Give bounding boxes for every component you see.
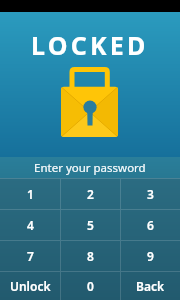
staticText: 2	[87, 186, 94, 202]
staticText: 8	[87, 248, 94, 264]
staticText: 7	[27, 248, 34, 264]
button[interactable]: Back	[120, 271, 180, 300]
button[interactable]: 0	[60, 271, 120, 300]
staticText: 5	[87, 217, 94, 233]
staticText: Back	[136, 278, 165, 294]
button[interactable]: 5	[60, 209, 120, 240]
staticText: 4	[27, 217, 34, 233]
staticText: 3	[147, 186, 154, 202]
staticText: 6	[147, 217, 154, 233]
button[interactable]: 7	[0, 240, 60, 271]
button[interactable]: 4	[0, 209, 60, 240]
button[interactable]: 1	[0, 178, 60, 209]
staticText: Enter your password	[34, 160, 146, 176]
staticText: LOCKED	[31, 28, 149, 62]
button[interactable]: 2	[60, 178, 120, 209]
button[interactable]: 8	[60, 240, 120, 271]
button[interactable]: 6	[120, 209, 180, 240]
staticText: Unlock	[10, 278, 51, 294]
staticText: 9	[147, 248, 154, 264]
button[interactable]: 3	[120, 178, 180, 209]
staticText: 1	[27, 186, 34, 202]
button[interactable]: Unlock	[0, 271, 60, 300]
button[interactable]: 9	[120, 240, 180, 271]
staticText: 0	[87, 278, 94, 294]
